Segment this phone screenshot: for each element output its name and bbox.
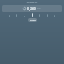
button[interactable]: 8,240	[2, 5, 62, 12]
button[interactable]: Start workout	[28, 18, 37, 22]
staticText: 8,240	[27, 6, 36, 11]
staticText: ACTIVITY	[2, 1, 62, 4]
button[interactable]: Weekly activity chart	[2, 13, 62, 17]
staticText: kcal	[37, 7, 41, 10]
staticText: START	[30, 19, 36, 22]
